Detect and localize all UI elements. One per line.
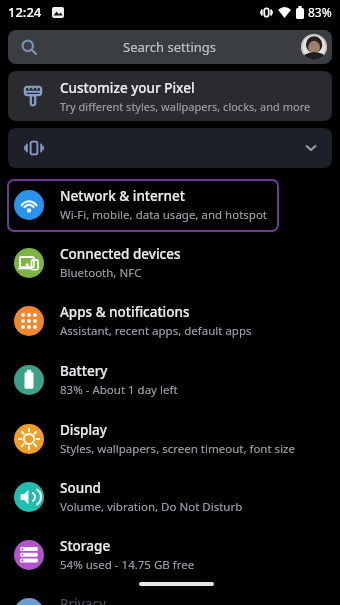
button[interactable]: Network & internet [0, 176, 340, 234]
staticText: Wi-Fi, mobile, data usage, and hotspot [60, 207, 267, 223]
button[interactable]: Storage [0, 526, 340, 584]
button[interactable] [8, 128, 332, 168]
staticText: Display [60, 421, 107, 439]
staticText: Connected devices [60, 245, 181, 263]
staticText: Styles, wallpapers, screen timeout, font… [60, 441, 295, 457]
staticText: Bluetooth, NFC [60, 265, 142, 281]
staticText: Privacy [60, 595, 107, 605]
staticText: Customize your Pixel [60, 79, 195, 97]
button[interactable]: Apps & notifications [0, 292, 340, 350]
staticText: Network & internet [60, 187, 185, 205]
staticText: Volume, vibration, Do Not Disturb [60, 499, 243, 515]
button[interactable]: Customize your Pixel [8, 71, 332, 121]
button[interactable]: Display [0, 410, 340, 468]
button[interactable]: Sound [0, 468, 340, 526]
staticText: 54% used - 14.75 GB free [60, 557, 195, 573]
staticText: Battery [60, 362, 108, 380]
staticText: Assistant, recent apps, default apps [60, 323, 252, 339]
staticText: 12:24 [8, 3, 42, 21]
staticText: Storage [60, 537, 111, 555]
staticText: 83% [308, 4, 332, 20]
staticText: Try different styles, wallpapers, clocks… [60, 99, 311, 114]
button[interactable]: Privacy [0, 584, 340, 605]
button[interactable]: Connected devices [0, 234, 340, 292]
button[interactable]: Search settings [8, 30, 332, 64]
staticText: Sound [60, 479, 101, 497]
staticText: Search settings [123, 38, 217, 56]
staticText: Apps & notifications [60, 303, 190, 321]
button[interactable]: Battery [0, 351, 340, 409]
staticText: 83% - About 1 day left [60, 382, 178, 398]
